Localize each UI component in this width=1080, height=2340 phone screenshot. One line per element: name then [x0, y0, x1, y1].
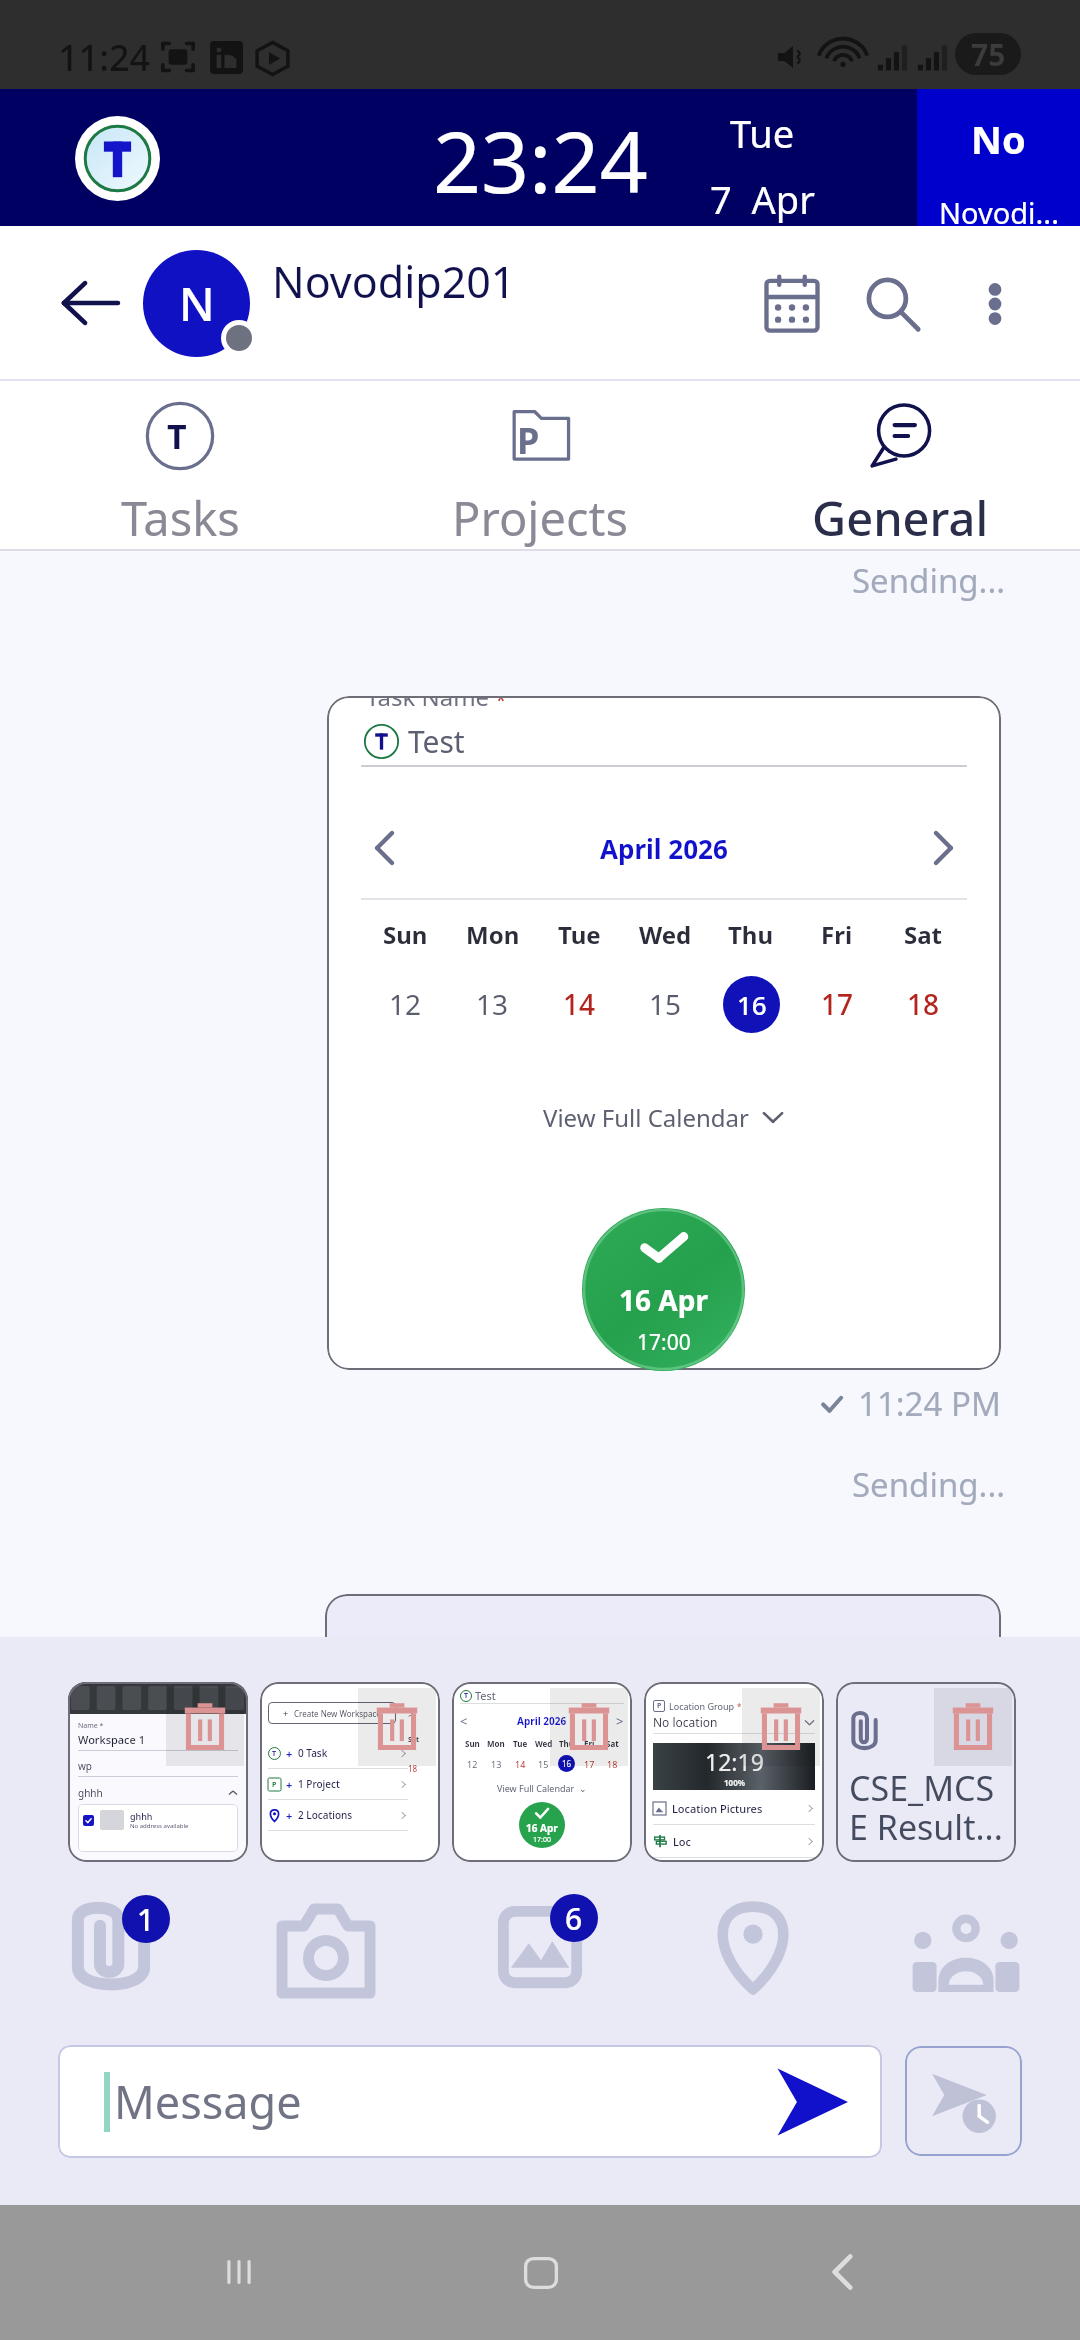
staticText: Test: [408, 721, 465, 762]
button[interactable]: Home: [481, 2212, 601, 2332]
staticText: 14: [563, 985, 596, 1023]
staticText: 2 Locations: [298, 1808, 353, 1822]
staticText: Workspace 1: [78, 1732, 145, 1747]
button[interactable]: More options: [953, 262, 1037, 346]
staticText: T: [464, 1691, 469, 1701]
staticText: <: [460, 1712, 468, 1730]
button[interactable]: View Full Calendar: [327, 1096, 1001, 1138]
staticText: View Full Calendar: [543, 1101, 749, 1134]
staticText: 18: [607, 1758, 618, 1770]
staticText: P: [657, 1701, 662, 1711]
staticText: Name *: [78, 1721, 104, 1731]
button[interactable]: P: [360, 381, 720, 551]
staticText: Sat: [606, 1738, 619, 1749]
staticText: Loc: [673, 1834, 691, 1849]
button[interactable]: Back: [52, 265, 128, 341]
staticText: 23:24: [433, 103, 648, 213]
button[interactable]: Task Name: [327, 696, 1001, 1370]
staticText: Tue: [513, 1738, 528, 1749]
staticText: >: [616, 1712, 624, 1730]
button[interactable]: 16: [723, 976, 780, 1033]
staticText: 17: [821, 985, 854, 1023]
staticText: T: [272, 1749, 277, 1759]
staticText: April 2026: [517, 1714, 567, 1728]
staticText: CSE_MCS E Result...: [849, 1765, 1003, 1850]
staticText: No: [971, 113, 1026, 165]
button[interactable]: P: [644, 1682, 824, 1862]
button[interactable]: General: [720, 381, 1080, 551]
button[interactable]: Schedule send: [905, 2046, 1022, 2156]
staticText: 12:19: [705, 1746, 764, 1777]
staticText: 15: [538, 1758, 549, 1770]
staticText: 14: [515, 1758, 526, 1770]
button[interactable]: T: [0, 381, 360, 551]
staticText: Sat: [408, 1735, 420, 1745]
staticText: Sending...: [852, 1462, 1006, 1507]
button[interactable]: Calendar: [750, 262, 834, 346]
staticText: Thu: [728, 918, 774, 951]
staticText: wp: [78, 1759, 93, 1773]
button[interactable]: Message: [58, 2045, 882, 2158]
staticText: 15: [649, 985, 682, 1023]
staticText: 12: [467, 1758, 478, 1770]
staticText: +: [286, 1777, 293, 1792]
staticText: +: [286, 1746, 293, 1761]
staticText: 1: [137, 1899, 155, 1940]
staticText: 16: [562, 1758, 572, 1769]
staticText: 13: [476, 985, 509, 1023]
staticText: Tasks: [121, 486, 240, 550]
staticText: Sun: [465, 1738, 480, 1749]
staticText: 11:24: [58, 33, 151, 77]
button[interactable]: Profile: [143, 250, 259, 366]
staticText: P: [517, 416, 540, 465]
button[interactable]: [917, 89, 1080, 226]
staticText: 17: [584, 1758, 595, 1770]
staticText: 18: [408, 1763, 418, 1774]
button[interactable]: >: [260, 1682, 440, 1862]
staticText: *: [496, 696, 506, 713]
staticText: No location: [653, 1714, 718, 1730]
staticText: Fri: [821, 918, 853, 951]
button[interactable]: Next month: [915, 820, 971, 876]
button[interactable]: Attach file: [65, 1901, 157, 1993]
button[interactable]: Camera: [276, 1901, 376, 2001]
button[interactable]: Recents: [179, 2212, 299, 2332]
staticText: Sending...: [852, 558, 1006, 603]
button[interactable]: Gallery: [494, 1900, 588, 1994]
staticText: 6: [565, 1898, 583, 1939]
staticText: +: [283, 1707, 289, 1719]
button[interactable]: People: [906, 1890, 1026, 2010]
staticText: Location Pictures: [672, 1801, 763, 1816]
button[interactable]: CSE_MCS E Result...: [836, 1682, 1016, 1862]
button[interactable]: Back: [783, 2212, 903, 2332]
staticText: April 2026: [600, 831, 728, 866]
staticText: Novodi...: [939, 193, 1059, 232]
button[interactable]: Name *: [68, 1682, 248, 1862]
staticText: 16: [737, 987, 767, 1022]
staticText: 100%: [724, 1777, 745, 1788]
staticText: Sun: [383, 918, 428, 951]
button[interactable]: App logo: [75, 116, 160, 201]
staticText: Sat: [904, 918, 943, 951]
staticText: No address available: [130, 1822, 189, 1830]
staticText: Message: [114, 2071, 302, 2132]
staticText: 0 Task: [298, 1746, 328, 1760]
staticText: Wed: [535, 1738, 553, 1749]
staticText: 11:24 PM: [858, 1381, 1001, 1426]
staticText: Projects: [452, 486, 629, 550]
staticText: Novodip201: [272, 252, 516, 308]
staticText: Tue: [730, 107, 795, 159]
staticText: Mon: [466, 918, 520, 951]
staticText: Mon: [487, 1738, 505, 1749]
button[interactable]: Location: [707, 1902, 799, 1994]
staticText: T: [167, 413, 187, 459]
button[interactable]: Previous month: [357, 820, 413, 876]
staticText: ghhh: [78, 1786, 103, 1800]
staticText: 1 Project: [298, 1777, 340, 1791]
staticText: View Full Calendar ⌄: [497, 1782, 587, 1794]
button[interactable]: T: [452, 1682, 632, 1862]
staticText: Location Group: [669, 1700, 737, 1712]
staticText: 17:00: [533, 1835, 551, 1845]
button[interactable]: 16 Apr: [582, 1208, 745, 1371]
button[interactable]: Search: [851, 262, 935, 346]
